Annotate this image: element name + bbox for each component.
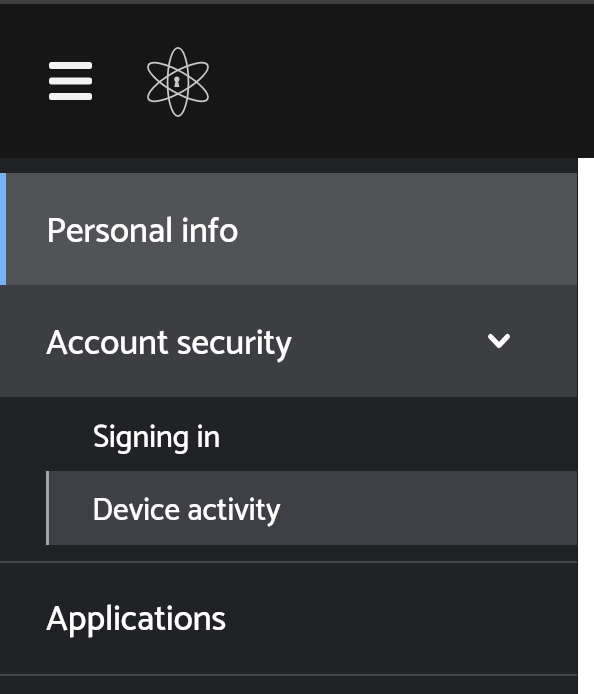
- staticText: Account security: [46, 316, 292, 373]
- button[interactable]: Proton account logo: [142, 26, 214, 136]
- button[interactable]: Personal info: [0, 173, 577, 285]
- button[interactable]: Open navigation menu: [19, 26, 119, 136]
- staticText: Applications: [46, 592, 227, 649]
- button[interactable]: Signing in: [0, 397, 577, 471]
- staticText: Device activity: [92, 486, 281, 537]
- button[interactable]: Account security: [0, 285, 577, 397]
- staticText: Personal info: [46, 204, 239, 261]
- button[interactable]: Applications: [0, 563, 577, 674]
- staticText: Signing in: [93, 413, 221, 464]
- button[interactable]: Device activity: [0, 471, 577, 545]
